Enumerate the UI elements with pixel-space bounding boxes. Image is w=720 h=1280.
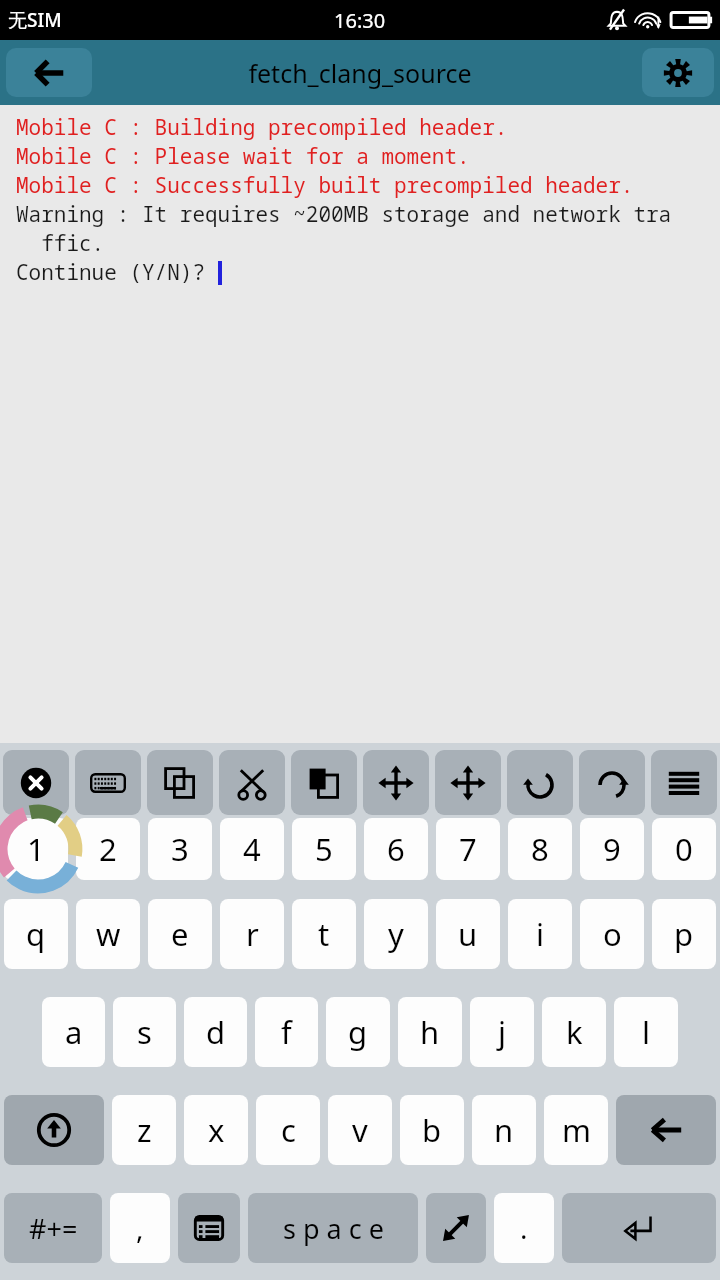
staticText: q [26, 913, 46, 955]
staticText: v [352, 1109, 368, 1151]
staticText: Mobile C : Building precompiled header. [16, 113, 508, 142]
staticText: 3 [171, 828, 189, 870]
staticText: 6 [387, 828, 405, 870]
staticText: g [348, 1011, 368, 1053]
button[interactable]: , [110, 1193, 170, 1263]
staticText: h [420, 1011, 440, 1053]
button[interactable]: d [184, 997, 247, 1067]
staticText: , [136, 1209, 144, 1247]
button[interactable]: f [255, 997, 318, 1067]
button[interactable]: Pan [435, 750, 501, 815]
staticText: a [65, 1011, 83, 1053]
button[interactable]: h [398, 997, 462, 1067]
button[interactable]: l [614, 997, 678, 1067]
staticText: s [137, 1011, 152, 1053]
button[interactable]: 6 [364, 818, 428, 880]
staticText: Continue (Y/N)? [16, 258, 218, 287]
staticText: j [498, 1011, 506, 1053]
button[interactable]: Copy [147, 750, 213, 815]
button[interactable]: Resize [426, 1193, 486, 1263]
button[interactable]: y [364, 899, 428, 969]
button[interactable]: a [42, 997, 105, 1067]
staticText: b [422, 1109, 442, 1151]
staticText: Mobile C : Please wait for a moment. [16, 142, 470, 171]
staticText: 8 [531, 828, 549, 870]
staticText: 9 [603, 828, 621, 870]
button[interactable]: e [148, 899, 212, 969]
button[interactable]: Keyboard [75, 750, 141, 815]
button[interactable]: o [580, 899, 644, 969]
staticText: 16:30 [334, 7, 386, 34]
staticText: fetch_clang_source [248, 56, 472, 90]
button[interactable]: j [470, 997, 534, 1067]
button[interactable]: i [508, 899, 572, 969]
button[interactable]: s [113, 997, 176, 1067]
staticText: x [208, 1109, 225, 1151]
button[interactable]: u [436, 899, 500, 969]
button[interactable]: v [328, 1095, 392, 1165]
staticText: m [562, 1109, 591, 1151]
staticText: #+= [29, 1210, 78, 1247]
button[interactable]: p [652, 899, 716, 969]
button[interactable]: Shift [4, 1095, 104, 1165]
staticText: f [281, 1011, 292, 1053]
staticText: e [171, 913, 189, 955]
button[interactable]: 0 [652, 818, 716, 880]
staticText: . [520, 1209, 528, 1247]
button[interactable]: Move [363, 750, 429, 815]
button[interactable]: 5 [292, 818, 356, 880]
button[interactable]: b [400, 1095, 464, 1165]
button[interactable]: Redo [579, 750, 645, 815]
button[interactable]: 1 [4, 818, 68, 880]
button[interactable]: g [326, 997, 390, 1067]
button[interactable]: x [184, 1095, 248, 1165]
button[interactable]: Back [6, 48, 92, 97]
staticText: 5 [315, 828, 333, 870]
button[interactable]: s p a c e [248, 1193, 418, 1263]
button[interactable]: Paste [291, 750, 357, 815]
button[interactable]: 2 [76, 818, 140, 880]
staticText: p [674, 913, 694, 955]
button[interactable]: List [178, 1193, 240, 1263]
staticText: 0 [675, 828, 693, 870]
button[interactable]: w [76, 899, 140, 969]
staticText: i [536, 913, 544, 955]
button[interactable]: Close [3, 750, 69, 815]
button[interactable]: c [256, 1095, 320, 1165]
button[interactable]: m [544, 1095, 608, 1165]
button[interactable]: Backspace [616, 1095, 716, 1165]
button[interactable]: 8 [508, 818, 572, 880]
button[interactable]: q [4, 899, 68, 969]
staticText: l [642, 1011, 650, 1053]
button[interactable]: k [542, 997, 606, 1067]
staticText: r [246, 913, 259, 955]
staticText: c [281, 1109, 296, 1151]
button[interactable]: Menu [651, 750, 717, 815]
button[interactable]: z [112, 1095, 176, 1165]
staticText: t [318, 913, 330, 955]
button[interactable]: 4 [220, 818, 284, 880]
staticText: k [566, 1011, 583, 1053]
staticText: o [603, 913, 622, 955]
button[interactable]: Cut [219, 750, 285, 815]
button[interactable]: r [220, 899, 284, 969]
staticText: d [206, 1011, 226, 1053]
button[interactable]: n [472, 1095, 536, 1165]
button[interactable]: Undo [507, 750, 573, 815]
staticText: ffic. [16, 229, 105, 258]
button[interactable]: 9 [580, 818, 644, 880]
staticText: w [96, 913, 121, 955]
staticText: 2 [99, 828, 117, 870]
button[interactable]: . [494, 1193, 554, 1263]
staticText: Mobile C : Successfully built precompile… [16, 171, 634, 200]
button[interactable]: Enter [562, 1193, 716, 1263]
staticText: y [388, 913, 404, 955]
staticText: n [494, 1109, 514, 1151]
button[interactable]: #+= [4, 1193, 102, 1263]
staticText: Warning : It requires ~200MB storage and… [16, 200, 672, 229]
button[interactable]: 7 [436, 818, 500, 880]
button[interactable]: t [292, 899, 356, 969]
button[interactable]: 3 [148, 818, 212, 880]
button[interactable]: Settings [642, 48, 714, 97]
staticText: 1 [27, 828, 45, 870]
